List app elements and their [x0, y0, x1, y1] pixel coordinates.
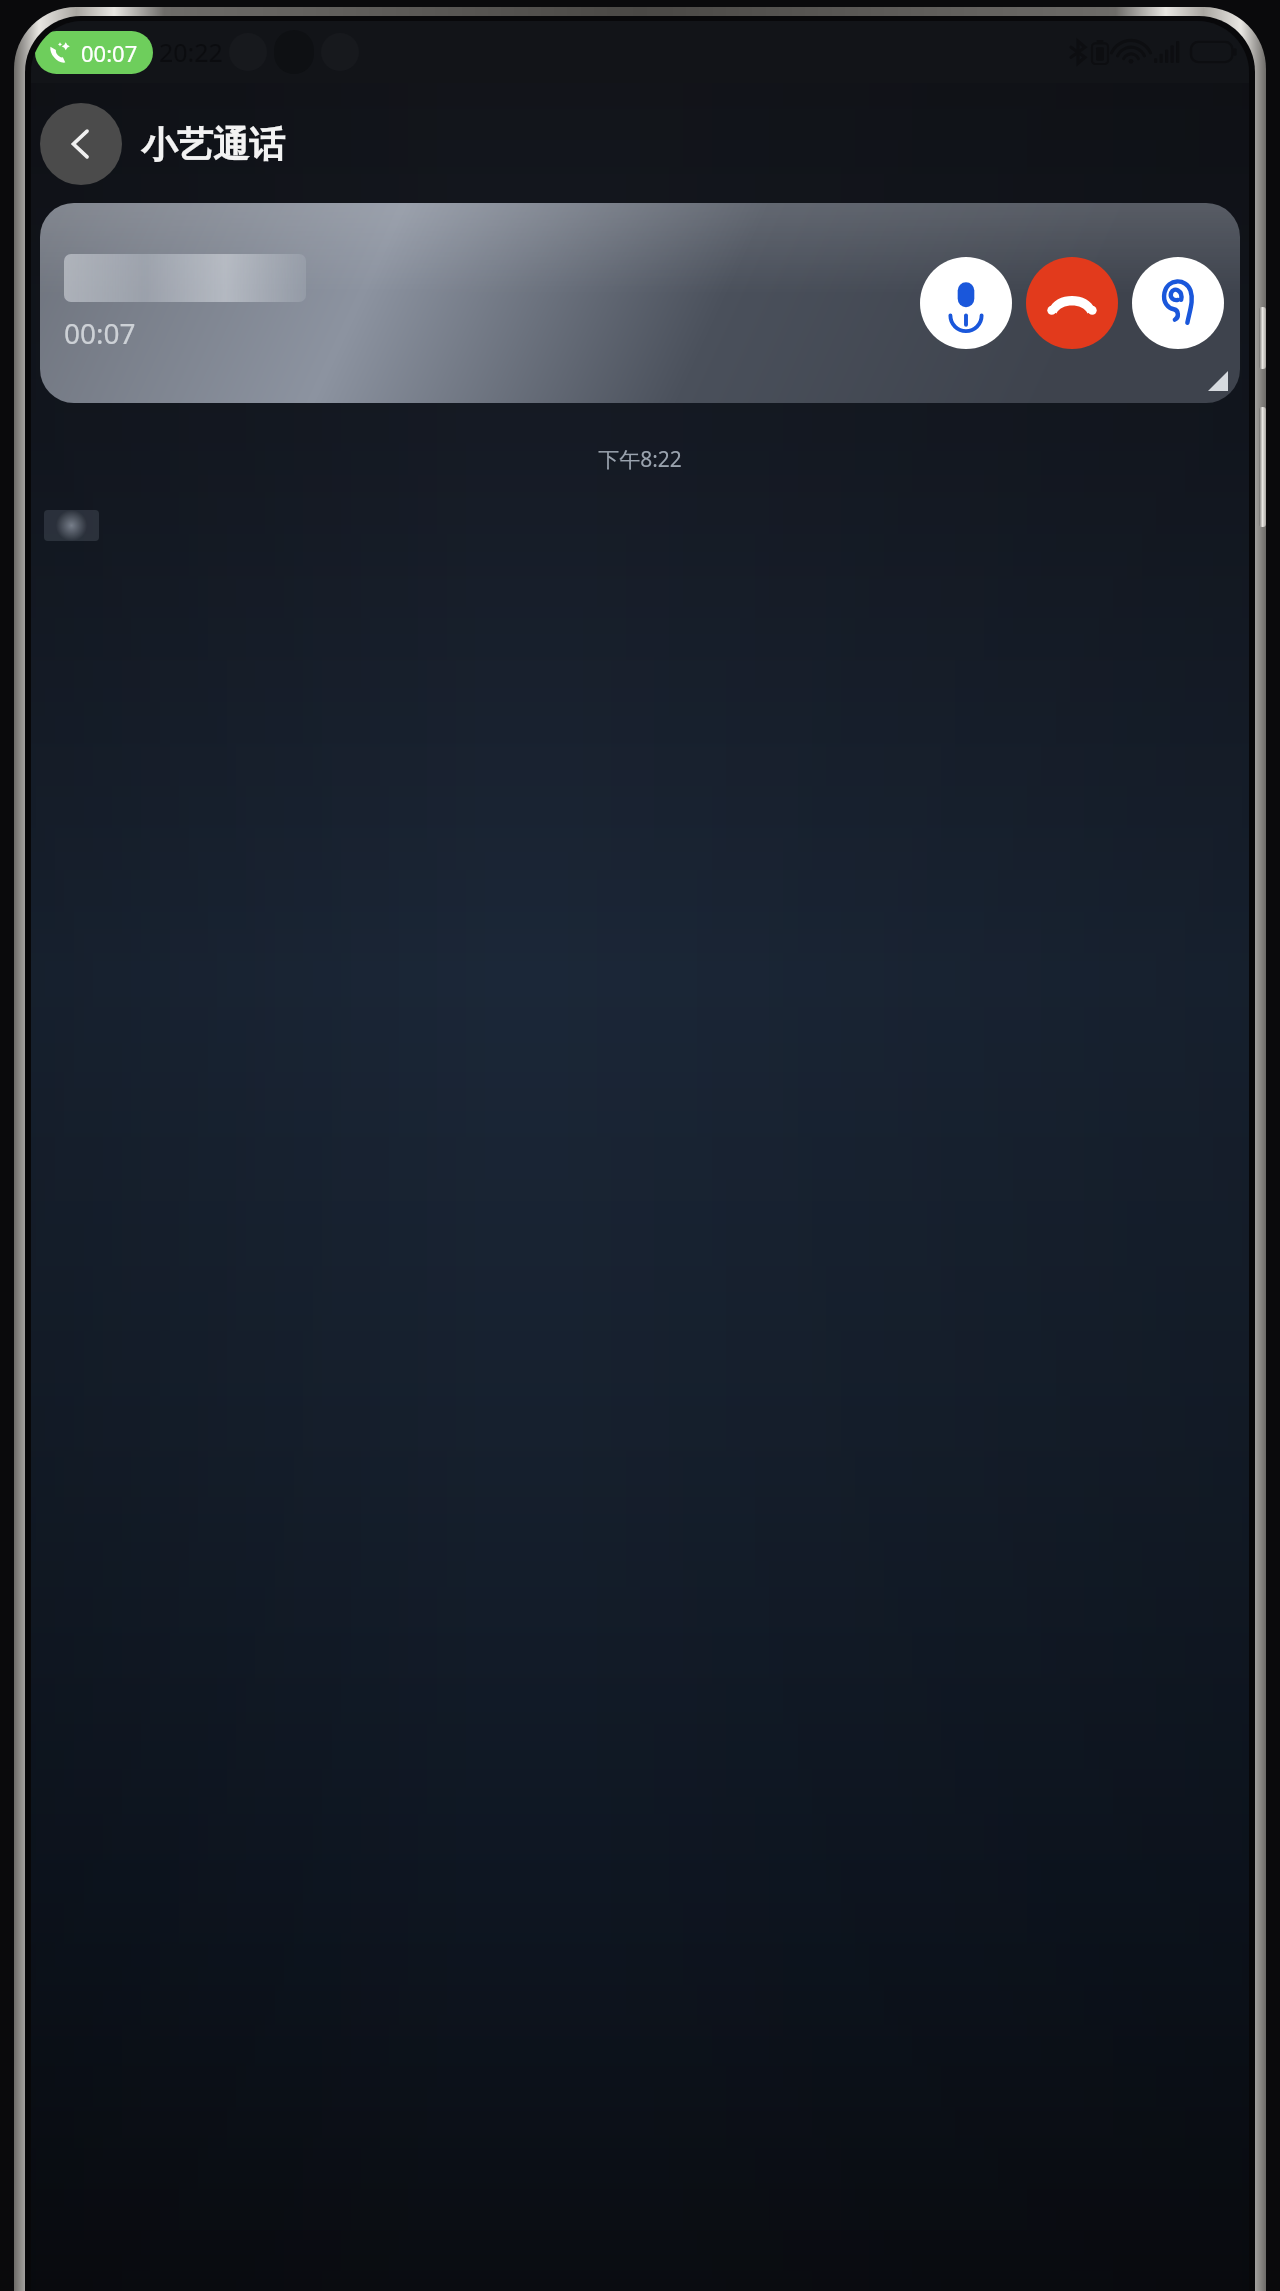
button[interactable]: 静音: [920, 257, 1012, 349]
button[interactable]: 听筒: [1132, 257, 1224, 349]
staticText: 00:07: [81, 38, 138, 68]
staticText: 00:07: [64, 314, 136, 352]
staticText: 下午8:22: [31, 445, 1249, 474]
button[interactable]: 返回: [40, 103, 122, 185]
button[interactable]: 00:07: [40, 203, 1240, 403]
staticText: 小艺通话: [141, 122, 285, 167]
button[interactable]: 挂断: [1026, 257, 1118, 349]
button[interactable]: 00:07: [35, 31, 153, 74]
